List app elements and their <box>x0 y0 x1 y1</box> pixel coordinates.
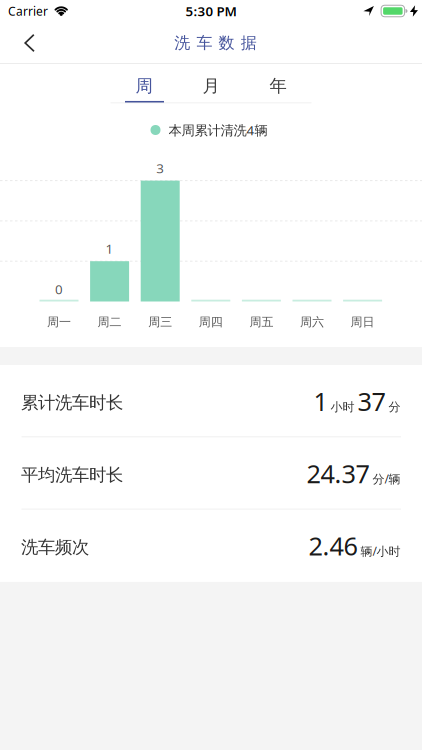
staticText: 车 <box>196 33 212 53</box>
staticText: 周三 <box>148 315 172 329</box>
staticText: 周二 <box>98 315 122 329</box>
staticText: 据 <box>241 33 257 53</box>
staticText: 周六 <box>300 315 324 329</box>
staticText: 0 <box>55 280 63 298</box>
staticText: 周四 <box>199 315 223 329</box>
staticText: 年 <box>269 75 286 97</box>
staticText: 37 <box>357 384 385 418</box>
staticText: 周五 <box>249 315 273 329</box>
staticText: 5:30 PM <box>185 2 236 20</box>
staticText: 平均洗车时长 <box>21 464 123 486</box>
staticText: 1 <box>313 384 327 418</box>
staticText: 分 <box>388 400 400 414</box>
staticText: 辆/小时 <box>360 543 400 559</box>
button[interactable]: 周 <box>110 65 177 103</box>
button[interactable]: Back <box>0 22 50 64</box>
staticText: 累计洗车时长 <box>21 392 123 413</box>
staticText: 月 <box>202 75 219 97</box>
staticText: 分/辆 <box>372 471 400 487</box>
button[interactable]: 月 <box>177 65 244 103</box>
staticText: Carrier <box>8 3 48 19</box>
staticText: 3 <box>156 159 164 177</box>
staticText: 周日 <box>351 315 375 329</box>
staticText: 周一 <box>47 315 71 329</box>
staticText: 小时 <box>330 400 354 414</box>
staticText: 24.37 <box>306 457 369 490</box>
staticText: 2.46 <box>308 529 357 562</box>
staticText: 周 <box>135 75 152 97</box>
staticText: 洗车频次 <box>21 537 89 558</box>
staticText: 1 <box>106 240 114 257</box>
staticText: 数 <box>219 33 235 53</box>
staticText: 本周累计清洗4辆 <box>168 121 267 139</box>
button[interactable]: 年 <box>244 65 311 103</box>
staticText: 洗 <box>174 33 190 53</box>
